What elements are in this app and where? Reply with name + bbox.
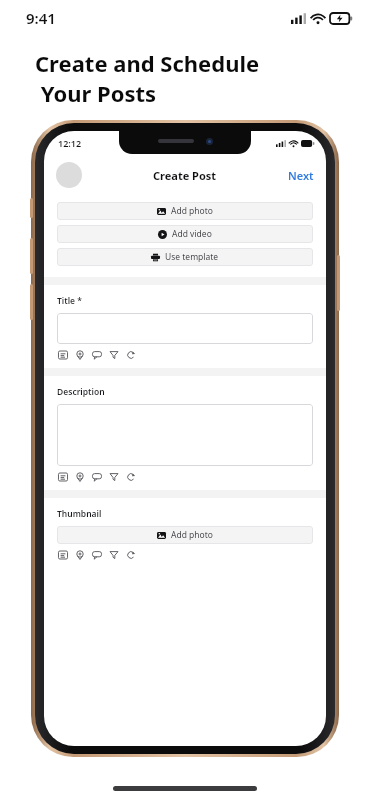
- staticText: Use template: [165, 251, 219, 263]
- button[interactable]: Profile: [56, 162, 82, 188]
- staticText: Description: [57, 386, 105, 398]
- button[interactable]: Description: [57, 404, 313, 466]
- button[interactable]: Use template: [57, 248, 313, 266]
- button[interactable]: Add video: [57, 225, 313, 243]
- button[interactable]: Location: [74, 471, 85, 482]
- button[interactable]: Comment: [91, 471, 102, 482]
- staticText: Create Post: [153, 168, 217, 183]
- staticText: Thumbnail: [57, 508, 102, 520]
- staticText: 12:12: [58, 137, 82, 149]
- button[interactable]: Refresh: [125, 471, 136, 482]
- button[interactable]: Comment: [91, 349, 102, 360]
- button[interactable]: Filter: [108, 549, 119, 560]
- button[interactable]: Comment: [91, 549, 102, 560]
- staticText: Create and Schedule: [35, 48, 260, 78]
- staticText: Add video: [172, 228, 212, 240]
- button[interactable]: Filter: [108, 471, 119, 482]
- button[interactable]: Text formatting: [57, 549, 68, 560]
- button[interactable]: Refresh: [125, 349, 136, 360]
- button[interactable]: Add photo: [57, 202, 313, 220]
- button[interactable]: Location: [74, 349, 85, 360]
- staticText: Your Posts: [35, 78, 157, 108]
- button[interactable]: Next: [276, 162, 326, 189]
- staticText: Next: [288, 168, 314, 183]
- button[interactable]: Add photo: [57, 526, 313, 544]
- button[interactable]: Filter: [108, 349, 119, 360]
- staticText: Add photo: [171, 529, 213, 541]
- button[interactable]: Location: [74, 549, 85, 560]
- button[interactable]: Text formatting: [57, 349, 68, 360]
- staticText: Title *: [57, 295, 82, 307]
- staticText: Add photo: [171, 205, 213, 217]
- button[interactable]: Title *: [57, 313, 313, 344]
- button[interactable]: Text formatting: [57, 471, 68, 482]
- staticText: 9:41: [26, 8, 56, 28]
- button[interactable]: Refresh: [125, 549, 136, 560]
